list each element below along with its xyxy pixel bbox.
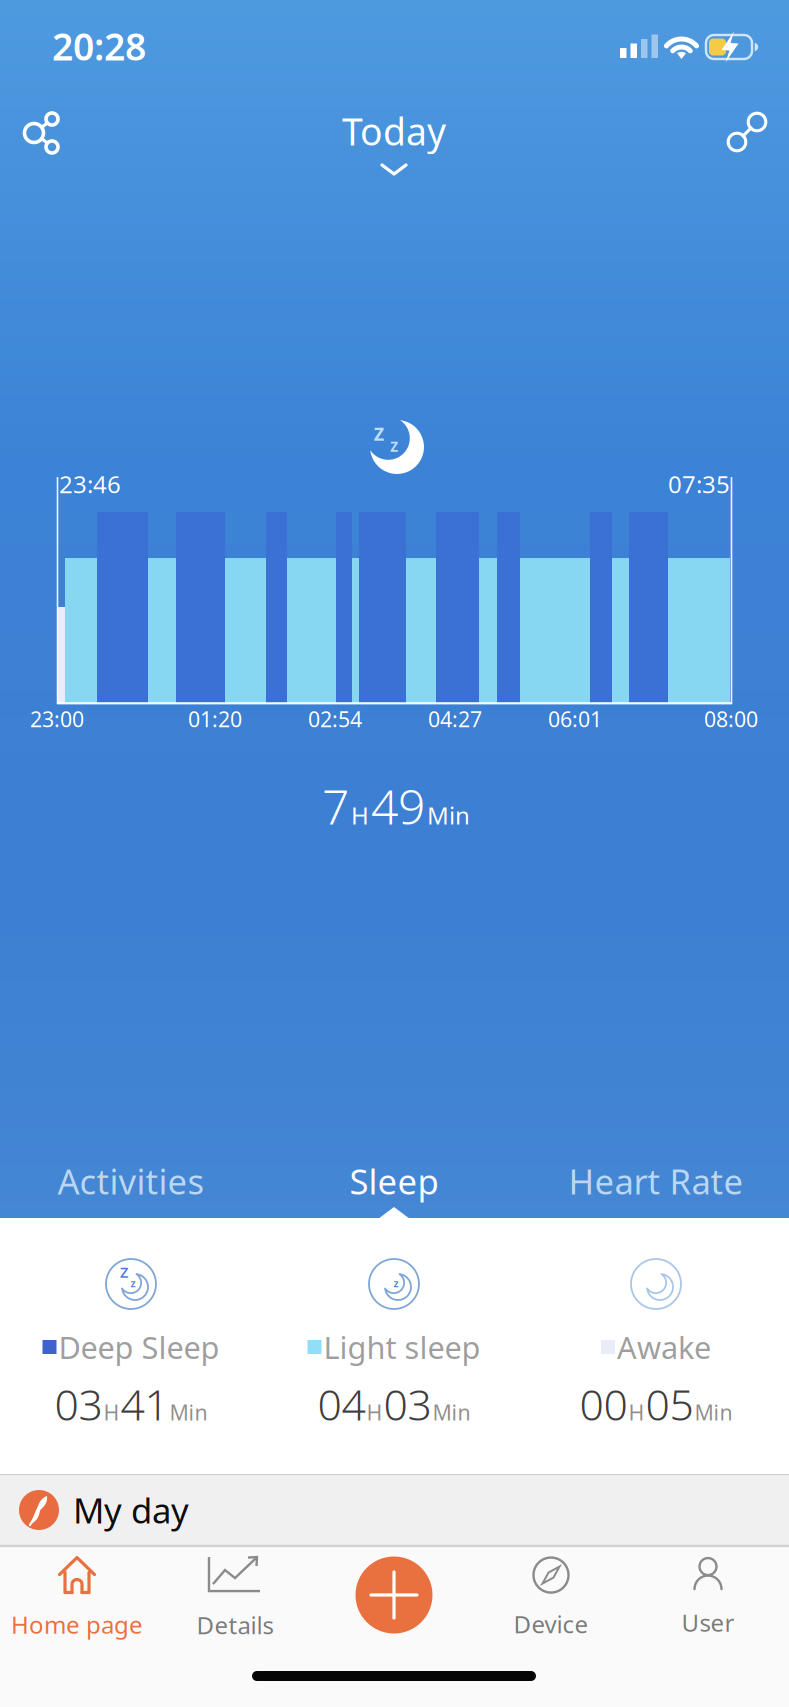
staticText: Min [427,799,470,831]
staticText: H [351,799,369,831]
staticText: Activities [57,1158,204,1204]
staticText: Deep Sleep [58,1327,219,1367]
staticText: 06:01 [548,705,602,733]
staticText: H [103,1398,119,1426]
staticText: Awake [617,1327,711,1367]
staticText: 02:54 [308,705,362,733]
staticText: Light sleep [323,1327,480,1367]
staticText: z [373,417,384,447]
staticText: 20:28 [52,21,146,71]
button[interactable] [380,163,408,177]
staticText: Device [513,1608,588,1640]
button[interactable]: Activities [57,1158,204,1204]
staticText: z [393,1276,398,1290]
staticText: 03 [383,1376,431,1432]
staticText: User [681,1607,734,1638]
button[interactable]: Today [342,106,446,156]
button[interactable] [22,107,66,159]
staticText: Min [432,1398,470,1426]
staticText: Sleep [349,1158,438,1204]
staticText: z [390,433,398,456]
staticText: 04:27 [428,705,482,733]
staticText: 00 [579,1376,627,1432]
staticText: H [628,1398,644,1426]
staticText: 05 [645,1376,693,1432]
staticText: My day [73,1487,189,1533]
staticText: 7 [322,774,349,838]
staticText: 01:20 [188,705,242,733]
staticText: Today [342,106,446,156]
staticText: Home page [11,1609,143,1640]
staticText: H [366,1398,382,1426]
staticText: 23:00 [30,705,84,733]
staticText: 04 [317,1376,365,1432]
staticText: Details [196,1609,273,1641]
staticText: 23:46 [59,468,121,500]
staticText: 41 [120,1376,168,1432]
staticText: 03 [54,1376,102,1432]
button[interactable]: Device [513,1556,588,1640]
staticText: Z [120,1262,128,1282]
staticText: 08:00 [704,705,758,733]
staticText: Min [694,1398,732,1426]
button[interactable] [355,1556,433,1634]
staticText: 07:35 [668,468,730,500]
staticText: 49 [371,774,425,838]
button[interactable]: Details [196,1555,273,1641]
button[interactable]: Sleep [349,1158,438,1204]
staticText: Min [169,1398,207,1426]
staticText: Heart Rate [568,1158,743,1204]
button[interactable]: User [681,1558,734,1638]
button[interactable] [726,111,767,152]
button[interactable]: Heart Rate [568,1158,743,1204]
button[interactable]: Home page [11,1556,143,1640]
staticText: z [130,1276,135,1290]
button[interactable]: My day [0,1474,789,1546]
